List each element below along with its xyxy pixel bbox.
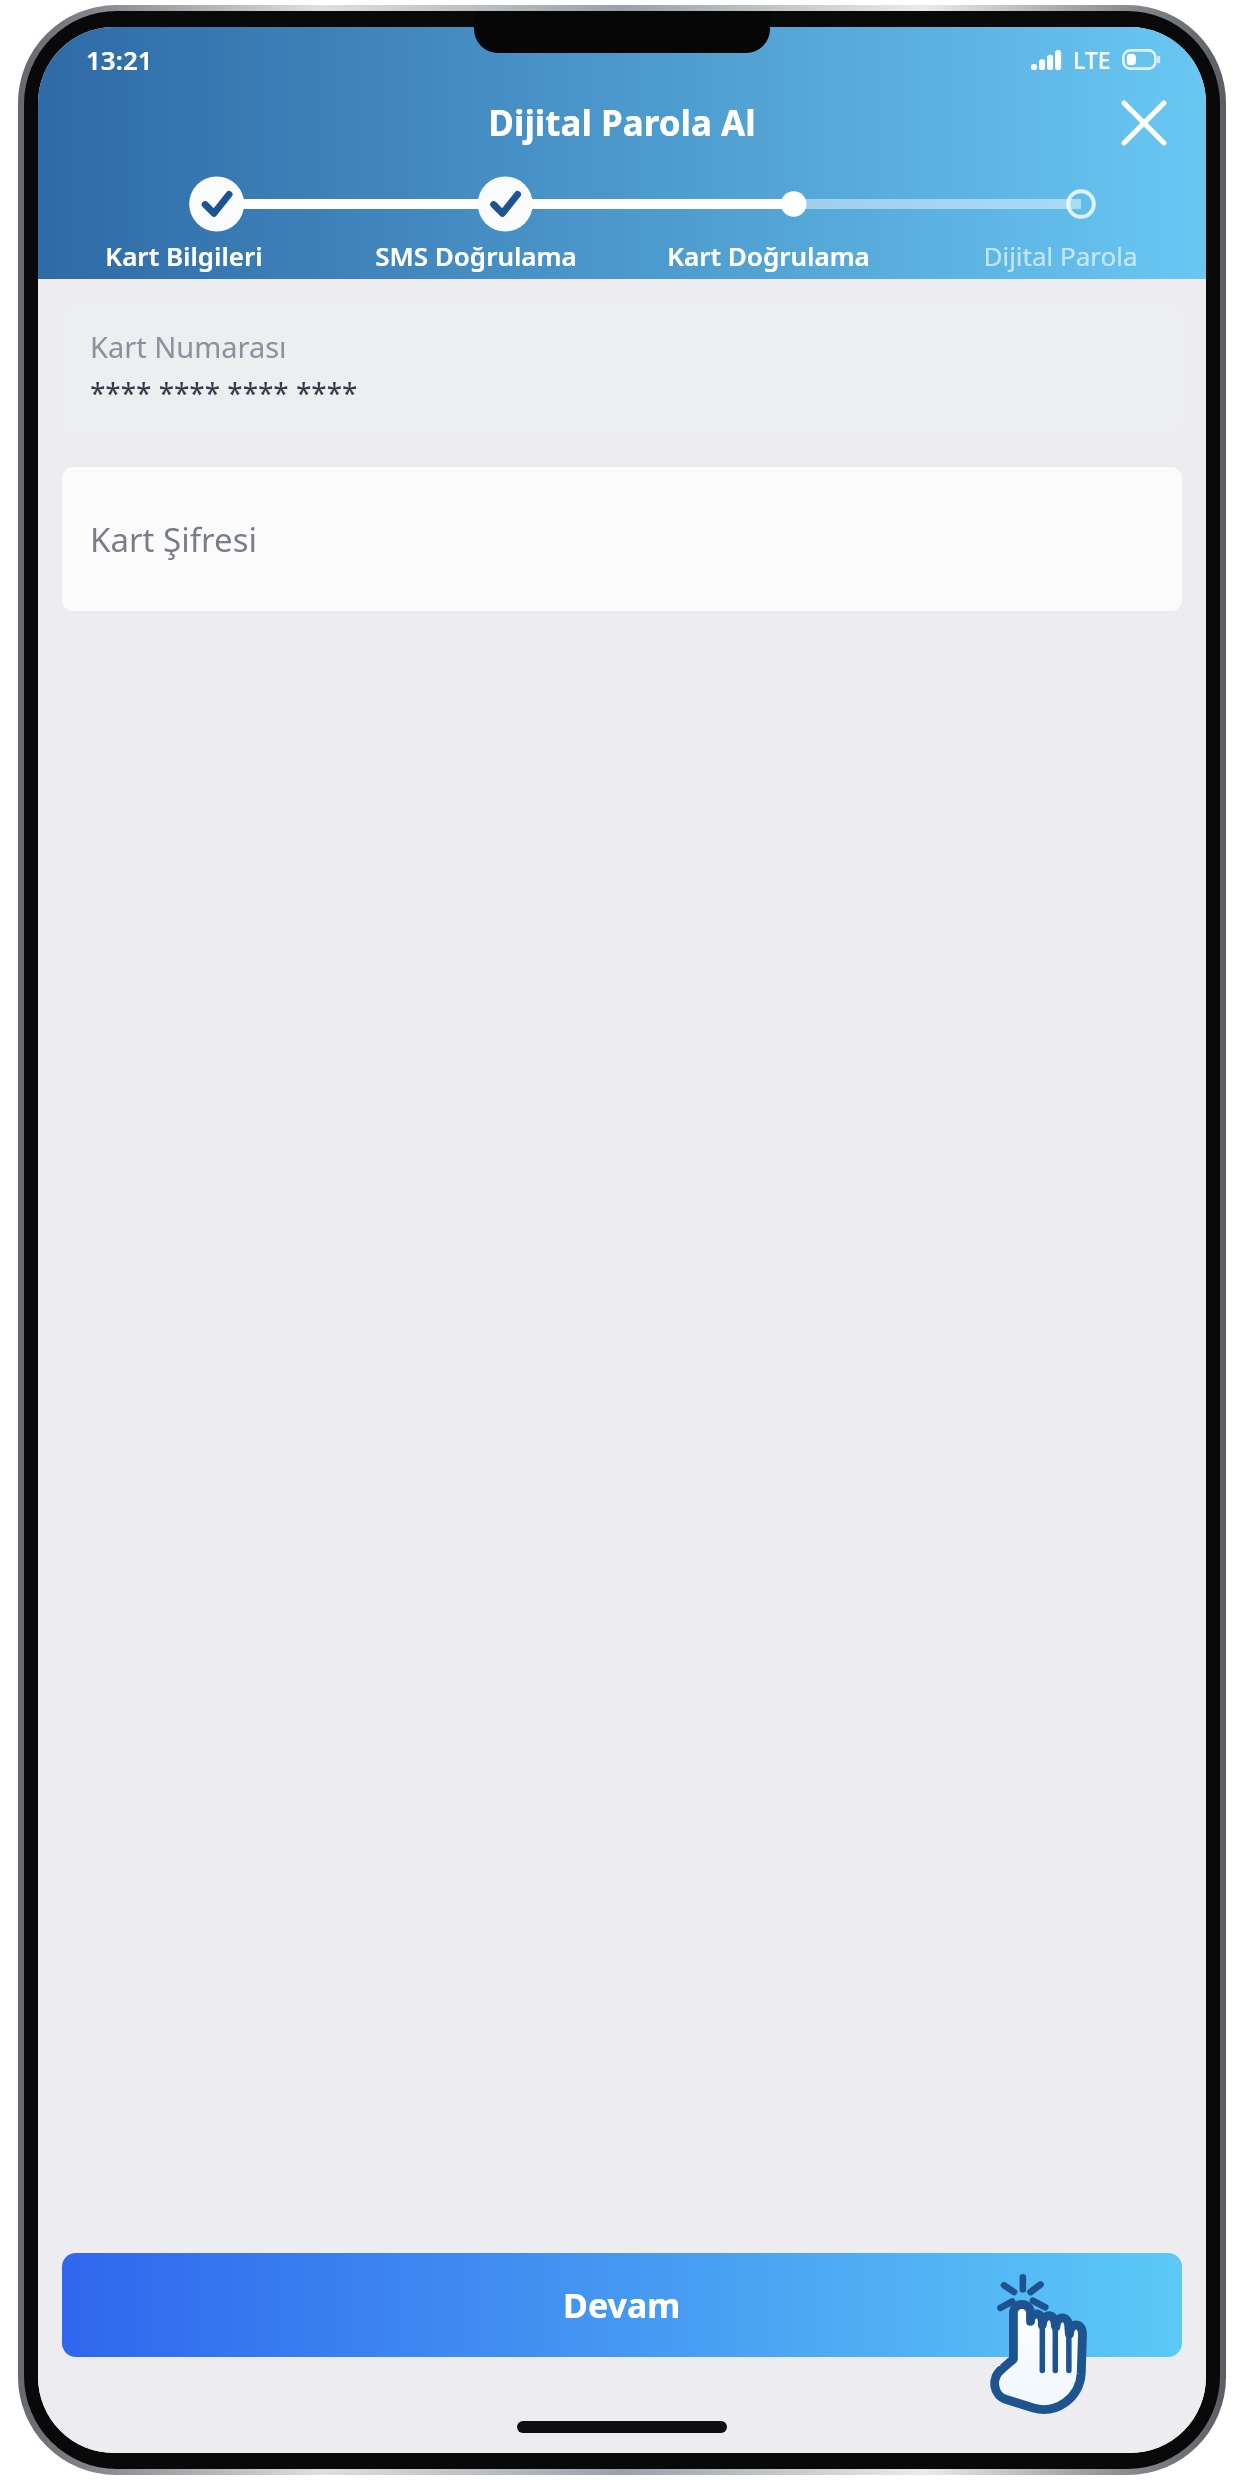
button[interactable]: Dijital Parola <box>914 238 1206 273</box>
staticText: Kart Şifresi <box>90 517 257 562</box>
staticText: Kart Numarası <box>90 327 287 366</box>
button[interactable]: Kart Şifresi <box>62 467 1182 611</box>
staticText: Devam <box>563 2282 681 2328</box>
staticText: **** **** **** **** <box>90 374 358 412</box>
staticText: Dijital Parola Al <box>488 99 756 147</box>
button[interactable]: Devam <box>62 2253 1182 2357</box>
staticText: 13:21 <box>86 42 153 77</box>
staticText: Kart Bilgileri <box>105 238 263 273</box>
staticText: Kart Doğrulama <box>667 238 870 273</box>
button[interactable]: SMS Doğrulama <box>330 238 622 273</box>
staticText: SMS Doğrulama <box>375 238 577 273</box>
button[interactable]: Kart Numarası <box>62 305 1182 433</box>
staticText: LTE <box>1073 44 1111 75</box>
button[interactable]: Kart Doğrulama <box>622 238 914 273</box>
staticText: Dijital Parola <box>983 238 1138 273</box>
button[interactable]: Kart Bilgileri <box>38 238 330 273</box>
button[interactable]: Kapat <box>1108 87 1180 159</box>
